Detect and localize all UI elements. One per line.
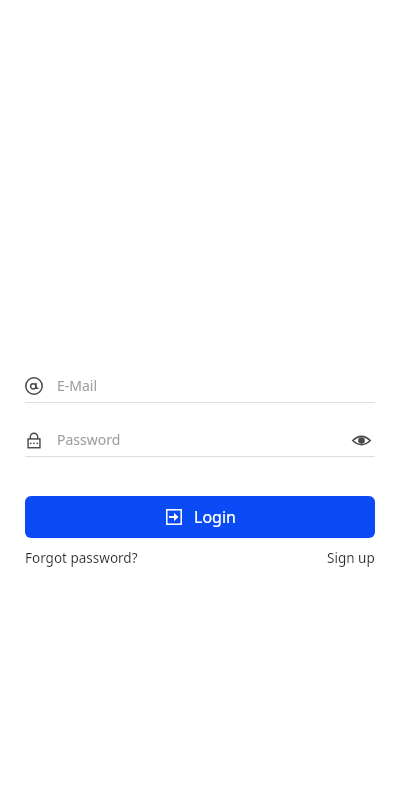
button[interactable]: Show password	[347, 426, 375, 454]
button[interactable]: Login	[25, 496, 375, 538]
staticText: Forgot password?	[25, 549, 138, 567]
staticText: Login	[194, 506, 236, 528]
staticText: E-Mail	[57, 376, 98, 395]
button[interactable]: Sign up	[327, 549, 375, 567]
staticText: Password	[57, 430, 347, 449]
staticText: Sign up	[327, 549, 375, 567]
button[interactable]: Forgot password?	[25, 549, 138, 567]
